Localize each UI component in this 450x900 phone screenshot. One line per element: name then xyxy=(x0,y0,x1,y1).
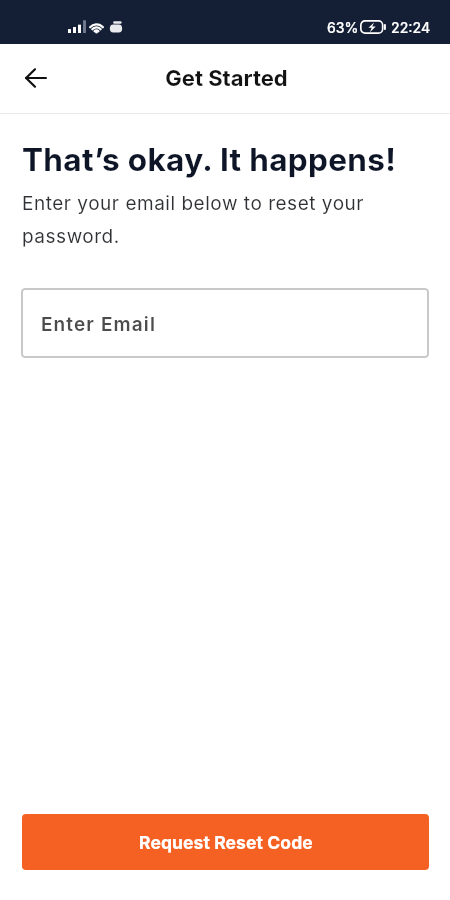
button[interactable]: Request Reset Code xyxy=(22,814,429,870)
staticText: That’s okay. It happens! xyxy=(22,140,397,178)
staticText: Enter your email below to reset your pas… xyxy=(22,192,422,247)
staticText: Request Reset Code xyxy=(139,832,313,853)
button[interactable]: Back xyxy=(14,56,58,100)
staticText: 22:24 xyxy=(391,19,431,36)
staticText: 63% xyxy=(327,19,359,36)
button[interactable]: Enter Email xyxy=(21,288,429,358)
staticText: Enter Email xyxy=(41,313,157,336)
staticText: Get Started xyxy=(165,65,288,92)
